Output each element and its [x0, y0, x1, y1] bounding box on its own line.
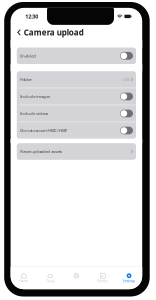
staticText: Cloud: [46, 279, 55, 283]
staticText: Enabled: [20, 53, 36, 58]
button[interactable]: Enabled: [17, 47, 136, 64]
button[interactable]: Photos: [90, 267, 116, 289]
button[interactable]: [63, 267, 89, 289]
staticText: Include videos: [20, 111, 48, 116]
staticText: Settings: [122, 279, 135, 283]
button[interactable]: Include images: [17, 88, 136, 105]
staticText: Folder: [20, 77, 32, 82]
button[interactable]: Folder: [17, 71, 136, 88]
button[interactable]: Cloud: [37, 267, 63, 289]
button[interactable]: Reset uploaded assets: [17, 143, 136, 160]
staticText: 12:30: [25, 13, 38, 20]
button[interactable]: Back: [14, 26, 24, 38]
staticText: iOS: [123, 77, 129, 82]
button[interactable]: Home: [11, 267, 37, 289]
staticText: Reset uploaded assets: [20, 149, 62, 154]
staticText: Do not convert HEIC/HEIF: [20, 128, 67, 133]
button[interactable]: Settings: [116, 267, 142, 289]
staticText: Photos: [97, 279, 108, 283]
staticText: Include images: [20, 94, 50, 99]
button[interactable]: Do not convert HEIC/HEIF: [17, 122, 136, 139]
button[interactable]: Include videos: [17, 105, 136, 122]
staticText: Home: [19, 279, 28, 283]
staticText: Camera upload: [24, 27, 84, 38]
